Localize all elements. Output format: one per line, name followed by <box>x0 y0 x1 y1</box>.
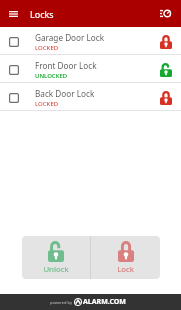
staticText: Garage Door Lock <box>35 32 105 43</box>
staticText: LOCKED <box>35 100 59 108</box>
staticText: powered by <box>50 300 72 305</box>
staticText: ALARM.COM <box>83 297 126 307</box>
button[interactable]: Unlock <box>22 236 90 279</box>
button[interactable]: Unlocked <box>156 60 176 80</box>
button[interactable]: Back Door Lock <box>0 83 181 111</box>
staticText: Back Door Lock <box>35 88 95 99</box>
button[interactable]: Lock <box>91 236 160 279</box>
button[interactable]: Locked <box>156 88 176 108</box>
button[interactable]: Garage Door Lock <box>0 27 181 55</box>
staticText: Lock <box>117 264 134 275</box>
button[interactable]: Front Door Lock <box>0 55 181 83</box>
button[interactable]: Locked <box>156 32 176 52</box>
staticText: Unlock <box>43 264 69 275</box>
staticText: LOCKED <box>35 44 59 52</box>
staticText: Front Door Lock <box>35 60 97 71</box>
staticText: Locks <box>30 8 54 20</box>
staticText: UNLOCKED <box>35 72 68 80</box>
button[interactable]: Menu <box>4 4 23 23</box>
button[interactable]: History <box>156 4 175 23</box>
